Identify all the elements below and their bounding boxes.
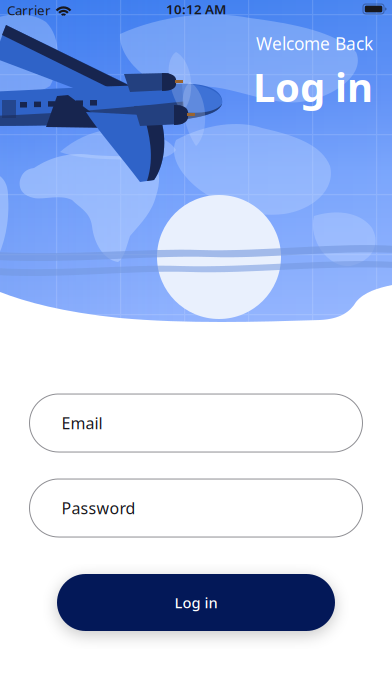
staticText: Log in bbox=[174, 593, 217, 612]
button[interactable]: Log in bbox=[57, 574, 335, 631]
staticText: Carrier bbox=[7, 1, 51, 19]
staticText: Email bbox=[61, 412, 102, 434]
staticText: Log in bbox=[253, 60, 373, 113]
staticText: Welcome Back bbox=[256, 32, 373, 55]
staticText: 10:12 AM bbox=[166, 0, 226, 18]
staticText: Password bbox=[61, 497, 135, 519]
button[interactable]: Email bbox=[29, 394, 362, 452]
button[interactable]: Password bbox=[29, 479, 362, 537]
